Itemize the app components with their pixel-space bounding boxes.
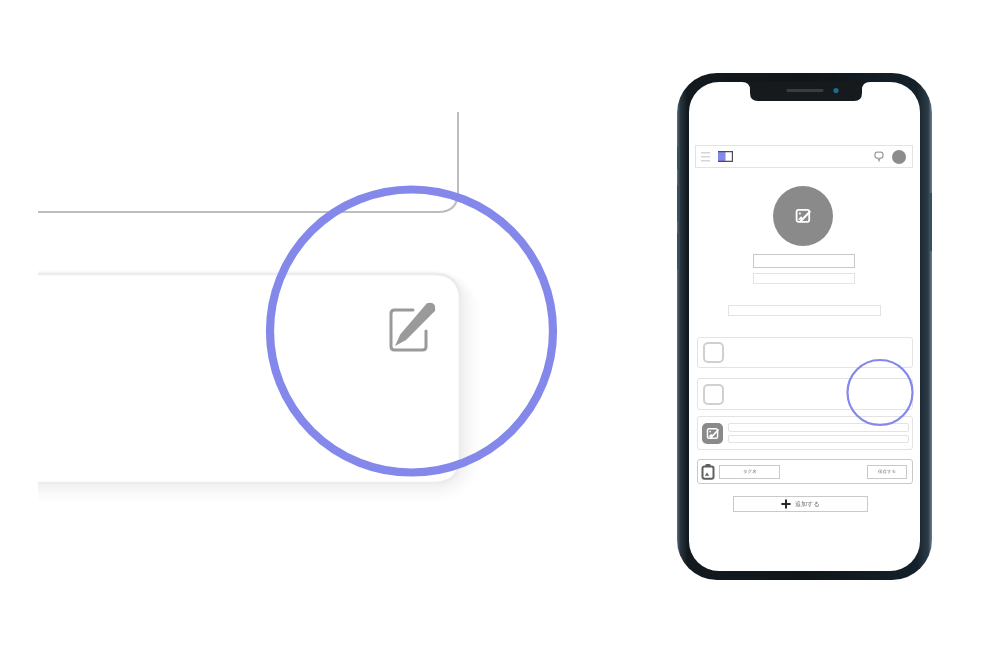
- button[interactable]: Profile image: [773, 186, 833, 246]
- button[interactable]: タグ名: [719, 465, 780, 479]
- button[interactable]: [753, 273, 855, 284]
- button[interactable]: Profile: [892, 150, 906, 164]
- button[interactable]: [697, 337, 913, 368]
- button[interactable]: Menu: [701, 152, 710, 162]
- button[interactable]: 追加する: [733, 496, 868, 512]
- staticText: タグ名: [743, 469, 757, 475]
- button[interactable]: [728, 305, 881, 316]
- button[interactable]: [697, 416, 913, 450]
- button[interactable]: Clipboard: [702, 464, 714, 479]
- button[interactable]: [753, 254, 855, 268]
- other: Tag row: [697, 459, 913, 484]
- staticText: 保存する: [878, 469, 897, 475]
- button[interactable]: 保存する: [867, 465, 907, 479]
- staticText: 追加する: [795, 500, 820, 508]
- button[interactable]: Messages: [875, 152, 883, 162]
- button[interactable]: [697, 378, 913, 410]
